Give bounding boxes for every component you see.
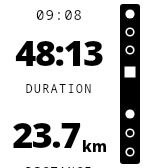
staticText: 23.7 — [12, 110, 80, 159]
staticText: DURATION — [25, 80, 93, 96]
staticText: DISTANCE — [25, 163, 93, 168]
staticText: 09:08 — [36, 5, 83, 24]
button[interactable]: 23.7 — [0, 110, 118, 159]
button[interactable]: 48:13 — [0, 28, 118, 77]
staticText: km — [82, 136, 107, 156]
staticText: 48:13 — [15, 28, 103, 77]
button[interactable]: Workout controls — [120, 4, 140, 164]
